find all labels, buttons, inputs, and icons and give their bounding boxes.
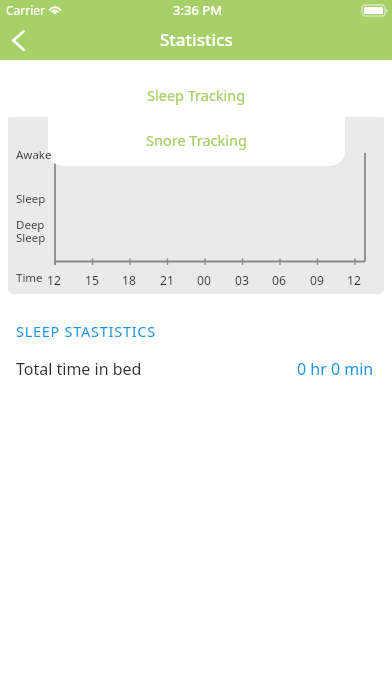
staticText: 0 hr 0 min <box>297 358 374 380</box>
staticText: Sleep <box>16 230 46 246</box>
staticText: Deep <box>16 217 45 233</box>
staticText: 03 <box>235 272 249 289</box>
staticText: 3:36 PM <box>173 1 223 19</box>
staticText: Time <box>16 270 43 286</box>
staticText: 15 <box>85 272 99 289</box>
staticText: Snore Tracking <box>146 130 247 150</box>
staticText: Total time in bed <box>16 358 142 380</box>
button[interactable]: Sleep Tracking <box>0 84 392 106</box>
button[interactable]: Back <box>0 20 44 60</box>
staticText: Statistics <box>160 28 233 51</box>
staticText: 12 <box>347 272 361 289</box>
staticText: 21 <box>160 272 174 289</box>
staticText: SLEEP STASTISTICS <box>16 321 156 341</box>
staticText: Sleep Tracking <box>147 85 246 105</box>
staticText: Awake <box>16 147 52 163</box>
staticText: 09 <box>310 272 324 289</box>
staticText: 00 <box>197 272 211 289</box>
staticText: 06 <box>272 272 286 289</box>
staticText: 18 <box>122 272 136 289</box>
staticText: Sleep <box>16 191 46 207</box>
button[interactable]: Total time in bed <box>16 357 374 381</box>
staticText: Carrier <box>6 2 46 18</box>
button[interactable]: Snore Tracking <box>0 129 392 151</box>
staticText: 12 <box>47 272 61 289</box>
